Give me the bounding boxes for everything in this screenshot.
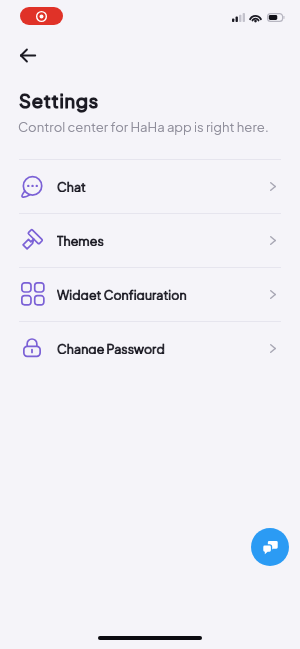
button[interactable]: Themes (0, 214, 300, 267)
staticText: Themes (57, 233, 104, 246)
button[interactable]: Chat (0, 160, 300, 213)
staticText: Themes (57, 233, 104, 246)
staticText: Chat (57, 179, 86, 192)
staticText: Widget Configuration (57, 287, 187, 300)
staticText: Widget Configuration (57, 287, 187, 300)
staticText: Change Password (57, 341, 165, 354)
button[interactable]: Open chat (251, 528, 289, 566)
button[interactable]: Change Password (0, 322, 300, 375)
staticText: Settings (19, 89, 99, 112)
button[interactable]: Widget Configuration (0, 268, 300, 321)
button[interactable]: Back (9, 36, 47, 74)
staticText: Change Password (57, 341, 165, 354)
staticText: Settings (19, 89, 99, 112)
staticText: Chat (57, 179, 86, 192)
staticText: Control center for HaHa app is right her… (18, 118, 269, 135)
